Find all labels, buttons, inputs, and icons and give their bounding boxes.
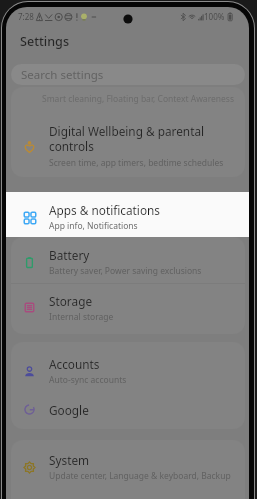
button[interactable]: Storage (11, 283, 245, 332)
staticText: Update center, Language & keyboard, Back… (49, 470, 231, 482)
button[interactable]: Google (11, 394, 245, 425)
button[interactable]: Accounts (11, 343, 245, 399)
staticText: Apps & notifications (49, 202, 160, 218)
staticText: Settings (20, 33, 70, 50)
staticText: Storage (49, 293, 93, 309)
button[interactable]: Battery (11, 239, 245, 285)
staticText: Digital Wellbeing & parental controls (49, 123, 209, 154)
staticText: App info, Notifications (49, 220, 138, 232)
staticText: System (49, 452, 90, 468)
staticText: Screen time, app timers, bedtime schedul… (49, 157, 224, 169)
staticText: Battery (49, 247, 90, 263)
button[interactable]: Apps & notifications (6, 192, 249, 237)
button[interactable]: Search settings (11, 64, 245, 85)
staticText: Auto-sync accounts (49, 374, 127, 386)
button[interactable]: System (11, 441, 245, 493)
staticText: 100% (204, 11, 225, 22)
staticText: Internal storage (49, 311, 114, 323)
staticText: 7:28 (18, 11, 34, 22)
staticText: Smart cleaning, Floating bar, Context Aw… (42, 93, 234, 105)
button[interactable]: Digital Wellbeing & parental controls (11, 113, 245, 177)
staticText: Accounts (49, 356, 100, 372)
staticText: Search settings (21, 67, 104, 83)
staticText: Battery saver, Power saving exclusions (49, 265, 202, 277)
staticText: Google (49, 402, 89, 418)
